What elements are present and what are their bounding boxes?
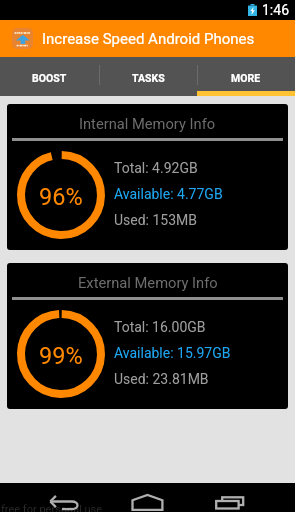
staticText: Increase Speed Android Phones [42,30,255,48]
staticText: BOOST [32,72,67,84]
staticText: MORE [231,72,261,84]
button[interactable]: Recent apps [208,483,254,512]
staticText: Total: 16.00GB [114,319,206,335]
button[interactable]: Internal Memory Info [7,104,288,250]
button[interactable]: TASKS [99,57,197,96]
button[interactable]: Back [42,483,88,512]
button[interactable]: External Memory Info [7,263,288,409]
staticText: Total: 4.92GB [114,160,198,176]
staticText: External Memory Info [78,274,218,291]
staticText: 1:46 [262,2,289,18]
staticText: Used: 23.81MB [114,371,209,387]
staticText: Available: 15.97GB [114,345,231,361]
staticText: Used: 153MB [114,212,198,228]
staticText: 96% [39,183,83,211]
button[interactable]: BOOST [0,57,99,96]
button[interactable]: MORE [197,57,295,96]
staticText: TASKS [132,72,165,84]
staticText: Internal Memory Info [79,115,216,132]
staticText: free for personal use [1,503,103,512]
staticText: 99% [39,342,83,370]
button[interactable]: Home [124,483,170,512]
staticText: Available: 4.77GB [114,186,223,202]
